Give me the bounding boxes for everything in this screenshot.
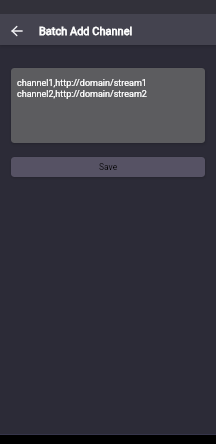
button[interactable]: Save (11, 157, 205, 177)
button[interactable]: channel1,http://domain/stream1 channel2,… (11, 68, 205, 143)
button[interactable]: Back (0, 14, 31, 45)
staticText: Batch Add Channel (39, 25, 133, 38)
staticText: channel1,http://domain/stream1 channel2,… (17, 78, 147, 100)
staticText: Save (99, 162, 118, 172)
